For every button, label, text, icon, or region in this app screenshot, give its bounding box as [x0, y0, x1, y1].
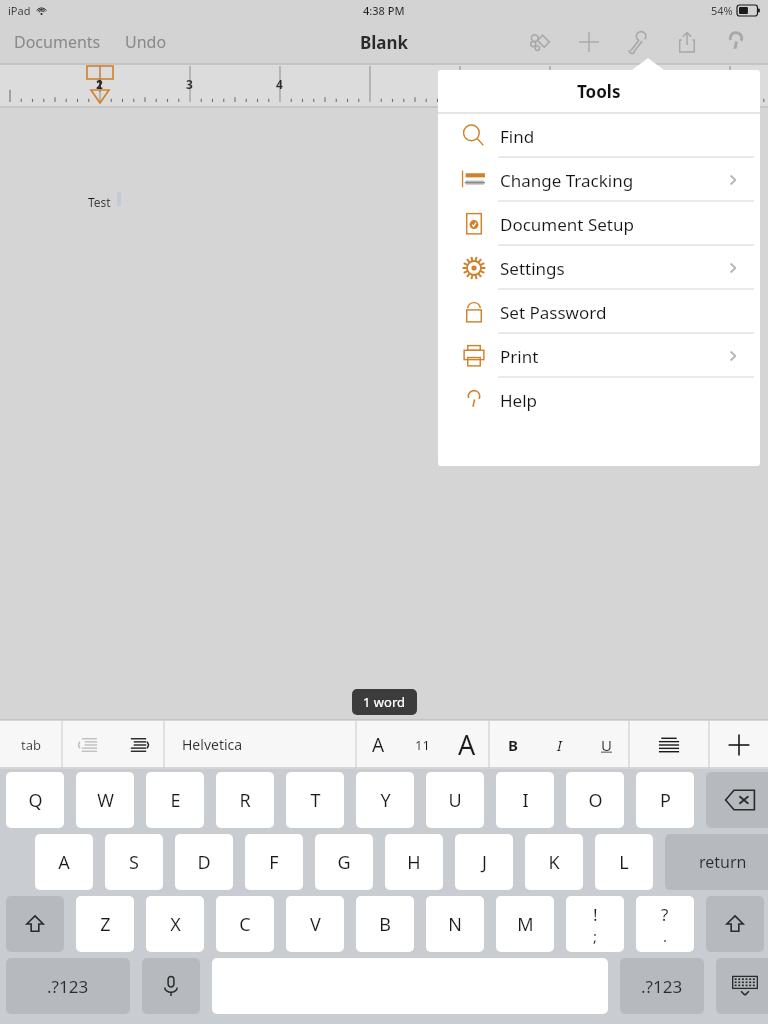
staticText: tab	[21, 736, 41, 754]
staticText: A	[372, 732, 385, 758]
button[interactable]: U	[426, 772, 484, 828]
staticText: H	[407, 850, 421, 875]
button[interactable]: Shift right	[706, 896, 764, 952]
button[interactable]: L	[595, 834, 653, 890]
button[interactable]: I	[496, 772, 554, 828]
button[interactable]: 11	[400, 720, 444, 769]
button[interactable]: K	[525, 834, 583, 890]
button[interactable]: B	[356, 896, 414, 952]
button[interactable]: I	[536, 720, 583, 769]
button[interactable]: Help	[722, 28, 750, 56]
staticText: ;	[593, 926, 598, 946]
staticText: G	[337, 850, 351, 875]
button[interactable]: A	[35, 834, 93, 890]
staticText: K	[548, 850, 560, 875]
button[interactable]: R	[216, 772, 274, 828]
staticText: Document Setup	[500, 213, 634, 236]
staticText: Print	[500, 345, 539, 368]
staticText: N	[448, 912, 462, 937]
button[interactable]: Find	[438, 114, 760, 158]
button[interactable]: tab	[0, 720, 62, 769]
staticText: 4	[276, 76, 283, 92]
button[interactable]: Print	[438, 334, 760, 378]
button[interactable]: Insert	[709, 720, 768, 769]
button[interactable]: Helvetica	[164, 720, 356, 769]
staticText: 54%	[711, 3, 733, 18]
staticText: iPad	[8, 3, 31, 18]
button[interactable]: A	[356, 720, 400, 769]
button[interactable]: !	[566, 896, 624, 952]
staticText: !	[593, 903, 598, 926]
button[interactable]: X	[146, 896, 204, 952]
staticText: ?	[661, 903, 669, 926]
button[interactable]: Insert	[575, 28, 603, 56]
button[interactable]: Increase indent	[113, 720, 164, 769]
button[interactable]: Dictate	[142, 958, 200, 1014]
button[interactable]: Decrease indent	[62, 720, 113, 769]
button[interactable]: Q	[6, 772, 64, 828]
staticText: Tools	[577, 80, 621, 103]
staticText: Test	[88, 194, 111, 210]
staticText: Y	[380, 788, 391, 813]
button[interactable]: Undo	[115, 23, 177, 61]
button[interactable]: Align	[629, 720, 709, 769]
button[interactable]: Help	[438, 378, 760, 422]
button[interactable]: J	[455, 834, 513, 890]
button[interactable]: T	[286, 772, 344, 828]
button[interactable]: Tools	[624, 28, 652, 56]
staticText: .?123	[641, 975, 683, 998]
staticText: J	[482, 850, 487, 875]
button[interactable]: Z	[76, 896, 134, 952]
button[interactable]: W	[76, 772, 134, 828]
staticText: Undo	[125, 31, 167, 53]
button[interactable]: Set Password	[438, 290, 760, 334]
button[interactable]: return	[665, 834, 768, 890]
button[interactable]: Format brush	[526, 28, 554, 56]
staticText: .?123	[47, 975, 89, 998]
staticText: Help	[500, 389, 538, 412]
button[interactable]: Share	[673, 28, 701, 56]
button[interactable]: D	[175, 834, 233, 890]
button[interactable]: Settings	[438, 246, 760, 290]
staticText: B	[379, 912, 391, 937]
button[interactable]: U	[583, 720, 629, 769]
staticText: Settings	[500, 257, 565, 280]
button[interactable]: B	[489, 720, 536, 769]
button[interactable]: Document Setup	[438, 202, 760, 246]
button[interactable]: N	[426, 896, 484, 952]
button[interactable]: Documents	[0, 23, 115, 61]
button[interactable]: A	[444, 720, 489, 769]
staticText: 11	[415, 736, 430, 754]
button[interactable]: Y	[356, 772, 414, 828]
button[interactable]: H	[385, 834, 443, 890]
button[interactable]: Hide keyboard	[716, 958, 768, 1014]
staticText: I	[522, 788, 529, 813]
button[interactable]: G	[315, 834, 373, 890]
button[interactable]: V	[286, 896, 344, 952]
button[interactable]: .?123	[620, 958, 704, 1014]
staticText: W	[97, 788, 114, 813]
button[interactable]: C	[216, 896, 274, 952]
button[interactable]: S	[105, 834, 163, 890]
staticText: 1	[96, 76, 103, 92]
staticText: E	[170, 788, 181, 813]
staticText: V	[310, 912, 321, 937]
button[interactable]: Backspace	[706, 772, 768, 828]
button[interactable]: O	[566, 772, 624, 828]
button[interactable]: Shift left	[6, 896, 64, 952]
button[interactable]: 1 word	[352, 689, 417, 715]
staticText: S	[129, 850, 139, 875]
button[interactable]: ?	[636, 896, 694, 952]
button[interactable]: .?123	[6, 958, 130, 1014]
button[interactable]: M	[496, 896, 554, 952]
button[interactable]: E	[146, 772, 204, 828]
staticText: Q	[28, 788, 43, 813]
staticText: O	[588, 788, 603, 813]
staticText: .	[663, 926, 668, 946]
button[interactable]: Change Tracking	[438, 158, 760, 202]
button[interactable]: F	[245, 834, 303, 890]
button[interactable]: P	[636, 772, 694, 828]
staticText: M	[517, 912, 534, 937]
staticText: 4:38 PM	[363, 3, 405, 18]
